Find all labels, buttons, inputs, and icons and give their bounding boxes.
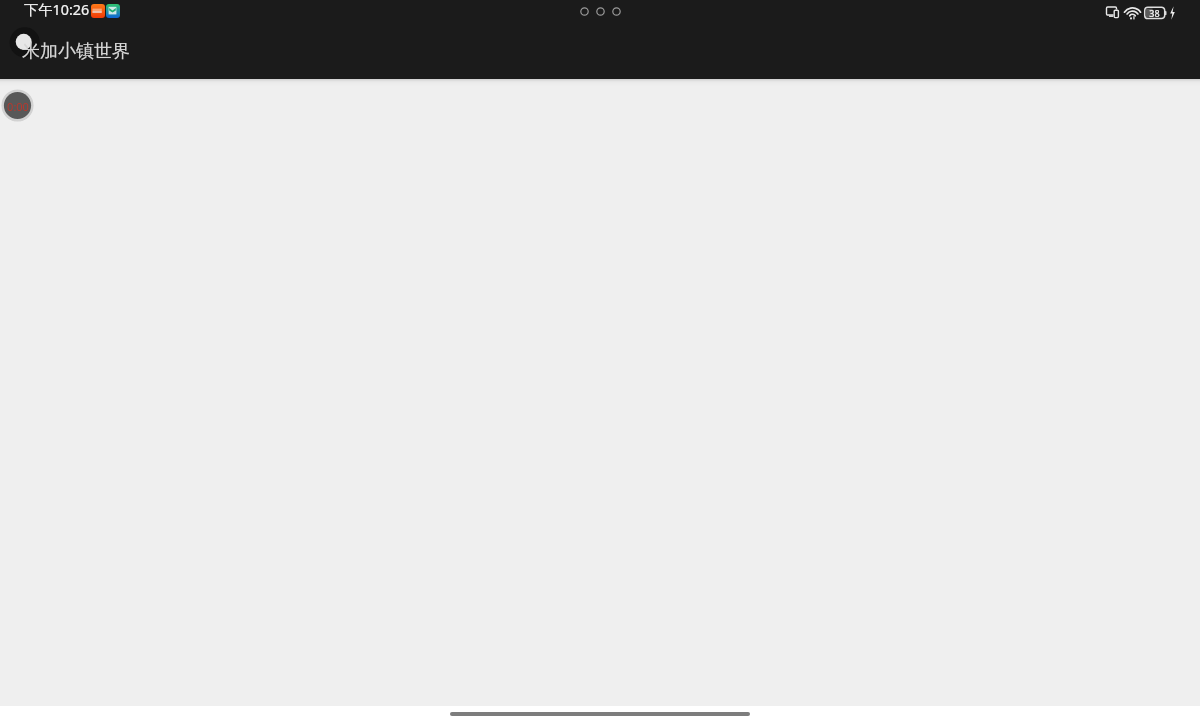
staticText: 0:00	[7, 99, 29, 114]
staticText: 米加小镇世界	[22, 40, 130, 63]
button[interactable]: Home	[450, 712, 750, 716]
staticText: 38	[1149, 7, 1160, 19]
button[interactable]: System status: cast, Wi-Fi, battery 38% …	[1106, 5, 1176, 20]
staticText: 下午10:26	[24, 0, 90, 20]
button[interactable]: 米加小镇世界	[0, 24, 1200, 78]
button[interactable]: Screen recorder timer 0:00	[1, 89, 34, 122]
button[interactable]: Notifications, 10:26 PM	[22, 0, 120, 20]
